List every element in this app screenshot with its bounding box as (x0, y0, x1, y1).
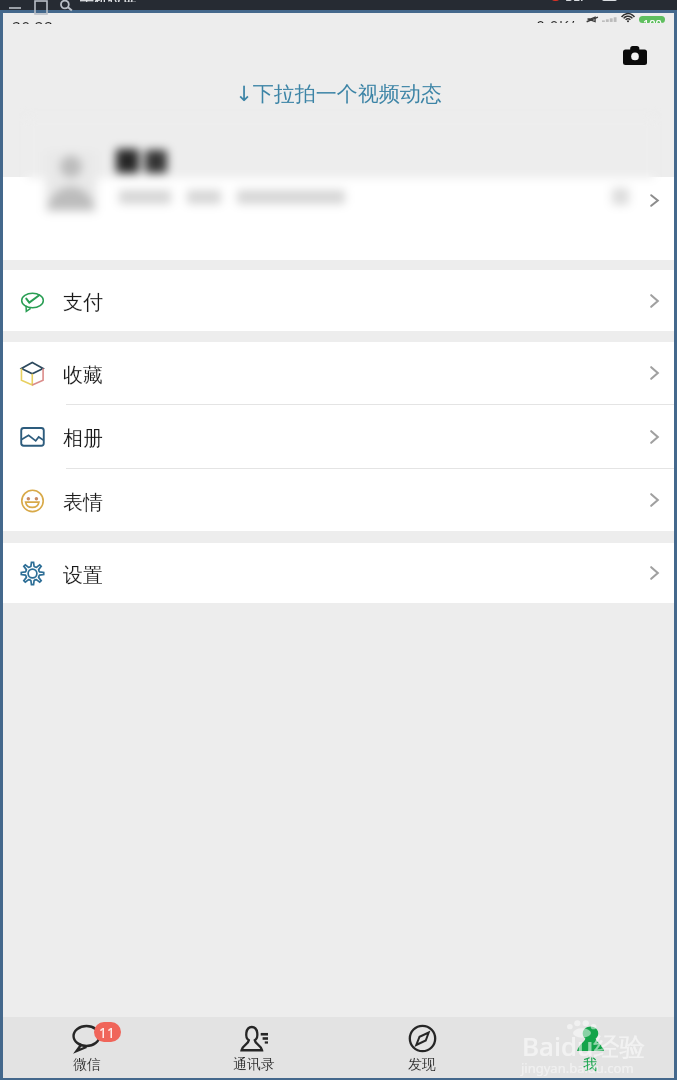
button[interactable]: 发现 (338, 1017, 506, 1078)
staticText: 通讯录 (233, 1056, 275, 1074)
button[interactable]: Camera (623, 46, 647, 65)
staticText: 收藏 (63, 363, 103, 388)
staticText: 100 (643, 16, 662, 23)
button[interactable]: 支付 (3, 270, 674, 331)
staticText: •••0.0K/s (518, 16, 583, 23)
button[interactable]: 收藏 (3, 342, 674, 404)
staticText: 支付 (63, 290, 103, 315)
staticText: 手机投屏 (80, 0, 136, 2)
staticText: 设置 (63, 563, 103, 588)
button[interactable]: 11 (3, 1017, 170, 1078)
staticText: 发现 (408, 1056, 436, 1074)
button[interactable] (3, 177, 674, 260)
staticText: REC (565, 0, 589, 1)
staticText: 相册 (63, 426, 103, 451)
staticText: 微信 (73, 1056, 101, 1074)
staticText: 11 (99, 1023, 116, 1042)
button[interactable]: 通讯录 (170, 1017, 338, 1078)
staticText: jingyan.baidu.com (521, 1059, 634, 1077)
staticText: 20:28 (12, 17, 53, 24)
button[interactable]: 我 (506, 1017, 674, 1078)
staticText: 我 (583, 1056, 597, 1074)
staticText: ↓下拉拍一个视频动态 (3, 81, 674, 107)
button[interactable]: 相册 (3, 405, 674, 468)
staticText: Baidu经验 (522, 1028, 646, 1064)
staticText: 表情 (63, 490, 103, 515)
button[interactable]: 表情 (3, 469, 674, 531)
button[interactable]: 设置 (3, 543, 674, 603)
